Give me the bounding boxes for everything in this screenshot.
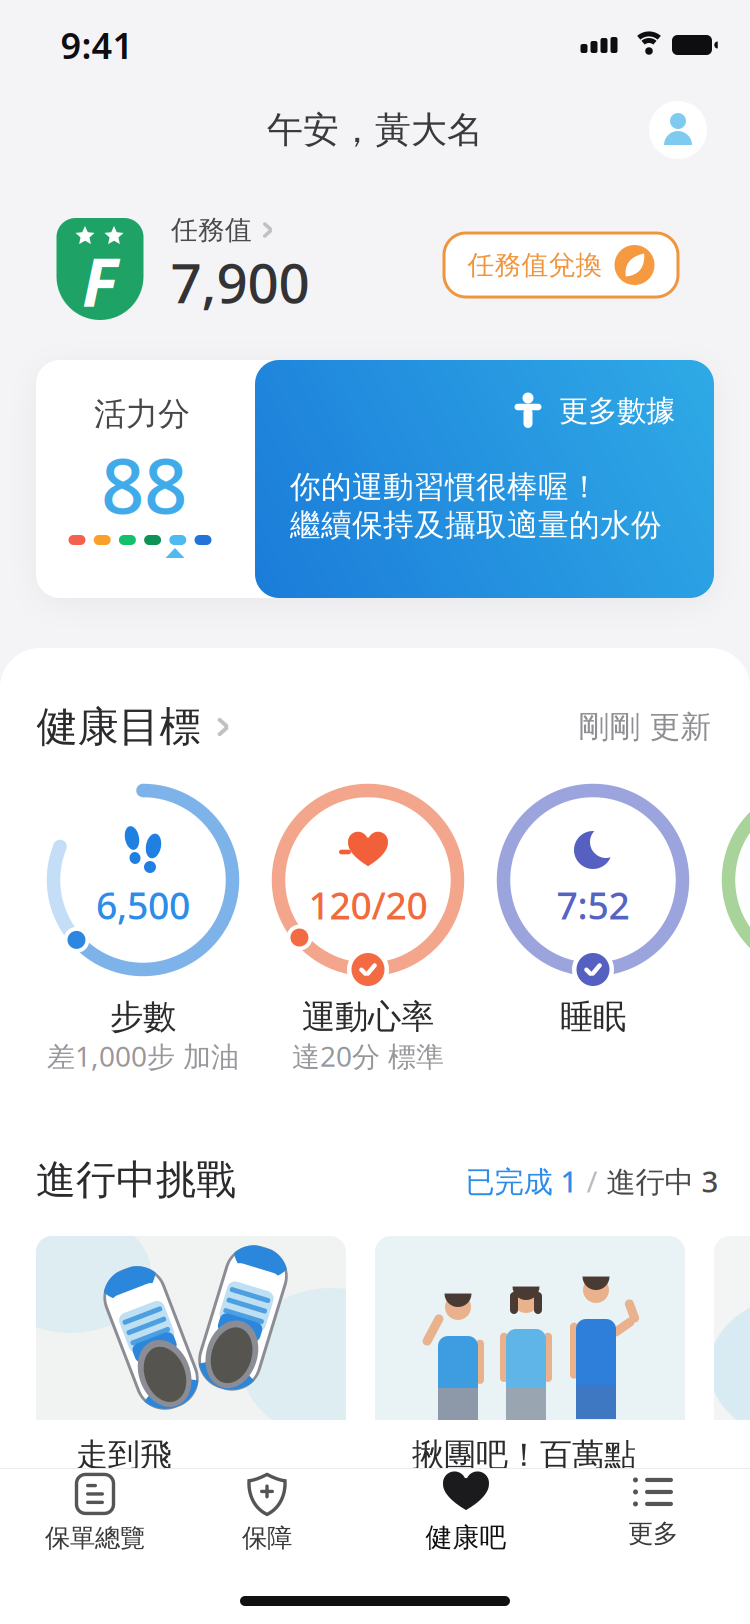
staticText: 進行中 3 [606,1161,718,1200]
button[interactable]: 7:52 [495,782,691,978]
button[interactable]: 更多 [628,1477,678,1549]
button[interactable]: 揪團吧！百萬點 [375,1236,685,1624]
staticText: 120/20 [308,880,427,930]
button[interactable]: 任務值兌換 [444,233,678,297]
staticText: 剛剛 更新 [578,708,711,746]
staticText: 活力分 [94,394,190,434]
staticText: 88 [101,433,187,534]
staticText: 差1,000步 加油 [47,1037,239,1075]
staticText: 7:52 [556,880,629,930]
staticText: 9:41 [60,21,133,69]
staticText: 走到飛 [76,1435,172,1475]
staticText: 繼續保持及攝取適量的水份 [290,506,662,544]
button[interactable]: 更多數據 [255,360,714,598]
staticText: 睡眠 [560,996,626,1037]
staticText: 保障 [242,1522,292,1553]
button[interactable]: 6,500 [45,782,241,978]
staticText: 任務值兌換 [467,249,602,281]
staticText: 步數 [110,996,176,1037]
button[interactable]: 挑戰王 [714,1236,750,1624]
button[interactable]: 健康目標 [36,702,229,752]
staticText: 任務值 [171,214,252,246]
staticText: 更多數據 [559,393,675,429]
button[interactable]: 會員 [649,101,707,159]
staticText: 進行中挑戰 [36,1155,236,1204]
staticText: 7,900 [170,246,309,318]
staticText: 已完成 1 [465,1161,577,1200]
staticText: / [586,1161,597,1200]
staticText: 更多 [628,1518,678,1549]
button[interactable]: 健康吧 [425,1472,506,1554]
staticText: F [82,237,118,325]
staticText: 午安，黃大名 [267,108,483,152]
button[interactable]: 120/20 [270,782,466,978]
staticText: 運動心率 [302,996,434,1037]
button[interactable]: 走到飛 [36,1236,346,1624]
staticText: 達20分 標準 [292,1037,444,1075]
staticText: 6,500 [96,880,190,930]
button[interactable]: 保單總覽 [45,1474,145,1553]
staticText: 健康吧 [425,1521,506,1554]
staticText: 你的運動習慣很棒喔！ [290,468,600,506]
staticText: 揪團吧！百萬點 [412,1435,636,1475]
button[interactable]: 任務值 [171,214,273,246]
staticText: 健康目標 [36,702,200,752]
staticText: 保單總覽 [45,1522,145,1553]
button[interactable]: 保障 [242,1474,292,1553]
